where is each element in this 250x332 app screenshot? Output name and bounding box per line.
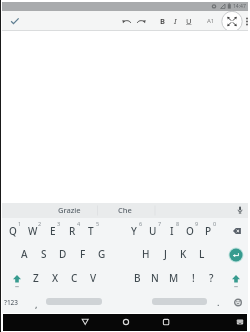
staticText: ? (209, 271, 214, 285)
button[interactable]: S (33, 246, 55, 262)
button[interactable]: I (169, 13, 181, 29)
staticText: S (41, 247, 47, 261)
staticText: U (186, 16, 192, 26)
button[interactable]: N (144, 270, 166, 286)
button[interactable]: ? (200, 270, 222, 286)
staticText: 8 (176, 220, 180, 227)
button[interactable]: Grazie (44, 202, 94, 217)
staticText: , (35, 298, 38, 310)
button[interactable]: M (163, 270, 185, 286)
button[interactable]: B (126, 270, 148, 286)
staticText: 3 (57, 220, 61, 227)
staticText: F (80, 247, 86, 261)
staticText: K (180, 247, 187, 261)
button[interactable] (120, 14, 134, 28)
button[interactable]: O (179, 223, 201, 239)
staticText: B (160, 16, 165, 26)
staticText: A1 (207, 17, 215, 25)
staticText: I (174, 16, 177, 26)
button[interactable]: T (80, 223, 102, 239)
button[interactable] (232, 296, 244, 308)
staticText: Y (131, 224, 137, 238)
staticText: V (90, 271, 97, 285)
button[interactable] (134, 14, 148, 28)
staticText: W (28, 224, 38, 238)
button[interactable]: Z (25, 270, 47, 286)
staticText: I (170, 224, 174, 238)
staticText: H (142, 247, 150, 261)
button[interactable] (221, 11, 243, 30)
staticText: N (151, 271, 159, 285)
button[interactable]: Che (105, 202, 145, 217)
button[interactable]: V (82, 270, 104, 286)
button[interactable] (6, 13, 22, 28)
staticText: 0 (213, 220, 217, 227)
button[interactable]: ?123 (0, 294, 22, 310)
button[interactable]: C (63, 270, 85, 286)
button[interactable] (46, 298, 102, 305)
button[interactable]: U (182, 13, 196, 29)
button[interactable]: , (31, 296, 41, 312)
button[interactable]: H (135, 246, 157, 262)
button[interactable] (228, 247, 244, 263)
button[interactable]: A (13, 246, 35, 262)
staticText: 7 (158, 220, 162, 227)
staticText: X (52, 271, 59, 285)
staticText: 4 (77, 220, 81, 227)
button[interactable] (159, 315, 173, 329)
button[interactable]: J (154, 246, 176, 262)
staticText: A (21, 247, 28, 261)
staticText: R (69, 224, 76, 238)
button[interactable]: X (44, 270, 66, 286)
button[interactable]: R (61, 223, 83, 239)
staticText: T (88, 224, 94, 238)
staticText: C (71, 271, 78, 285)
button[interactable]: L (191, 246, 213, 262)
staticText: 1 (18, 220, 22, 227)
staticText: Z (33, 271, 39, 285)
staticText: ?123 (4, 298, 19, 307)
staticText: P (205, 224, 212, 238)
staticText: O (186, 224, 194, 238)
staticText: 2 (38, 220, 42, 227)
staticText: L (199, 247, 205, 261)
button[interactable] (230, 224, 244, 238)
staticText: Che (118, 205, 132, 215)
button[interactable]: P (197, 223, 219, 239)
button[interactable] (10, 272, 24, 288)
button[interactable]: I (161, 223, 183, 239)
button[interactable] (233, 315, 247, 329)
button[interactable]: D (52, 246, 74, 262)
button[interactable]: K (172, 246, 194, 262)
button[interactable]: U (142, 223, 164, 239)
button[interactable]: . (213, 294, 223, 310)
button[interactable] (152, 298, 207, 305)
button[interactable] (234, 204, 247, 217)
button[interactable] (78, 315, 92, 329)
staticText: E (50, 224, 56, 238)
button[interactable]: A1 (203, 13, 219, 29)
staticText: 5 (96, 220, 100, 227)
staticText: D (59, 247, 67, 261)
staticText: Q (9, 224, 17, 238)
button[interactable]: ! (182, 270, 204, 286)
staticText: 6 (139, 220, 143, 227)
button[interactable]: Q (2, 223, 24, 239)
staticText: B (134, 271, 141, 285)
button[interactable]: W (22, 223, 44, 239)
staticText: ! (192, 271, 195, 285)
staticText: Grazie (58, 205, 81, 215)
staticText: . (217, 296, 220, 308)
button[interactable] (119, 315, 133, 329)
staticText: U (149, 224, 157, 238)
button[interactable]: F (72, 246, 94, 262)
staticText: G (98, 247, 106, 261)
button[interactable]: G (91, 246, 113, 262)
button[interactable]: Y (123, 223, 145, 239)
button[interactable]: E (42, 223, 64, 239)
staticText: J (164, 247, 167, 261)
button[interactable]: B (155, 13, 169, 29)
button[interactable] (229, 272, 243, 288)
staticText: 9 (195, 220, 199, 227)
